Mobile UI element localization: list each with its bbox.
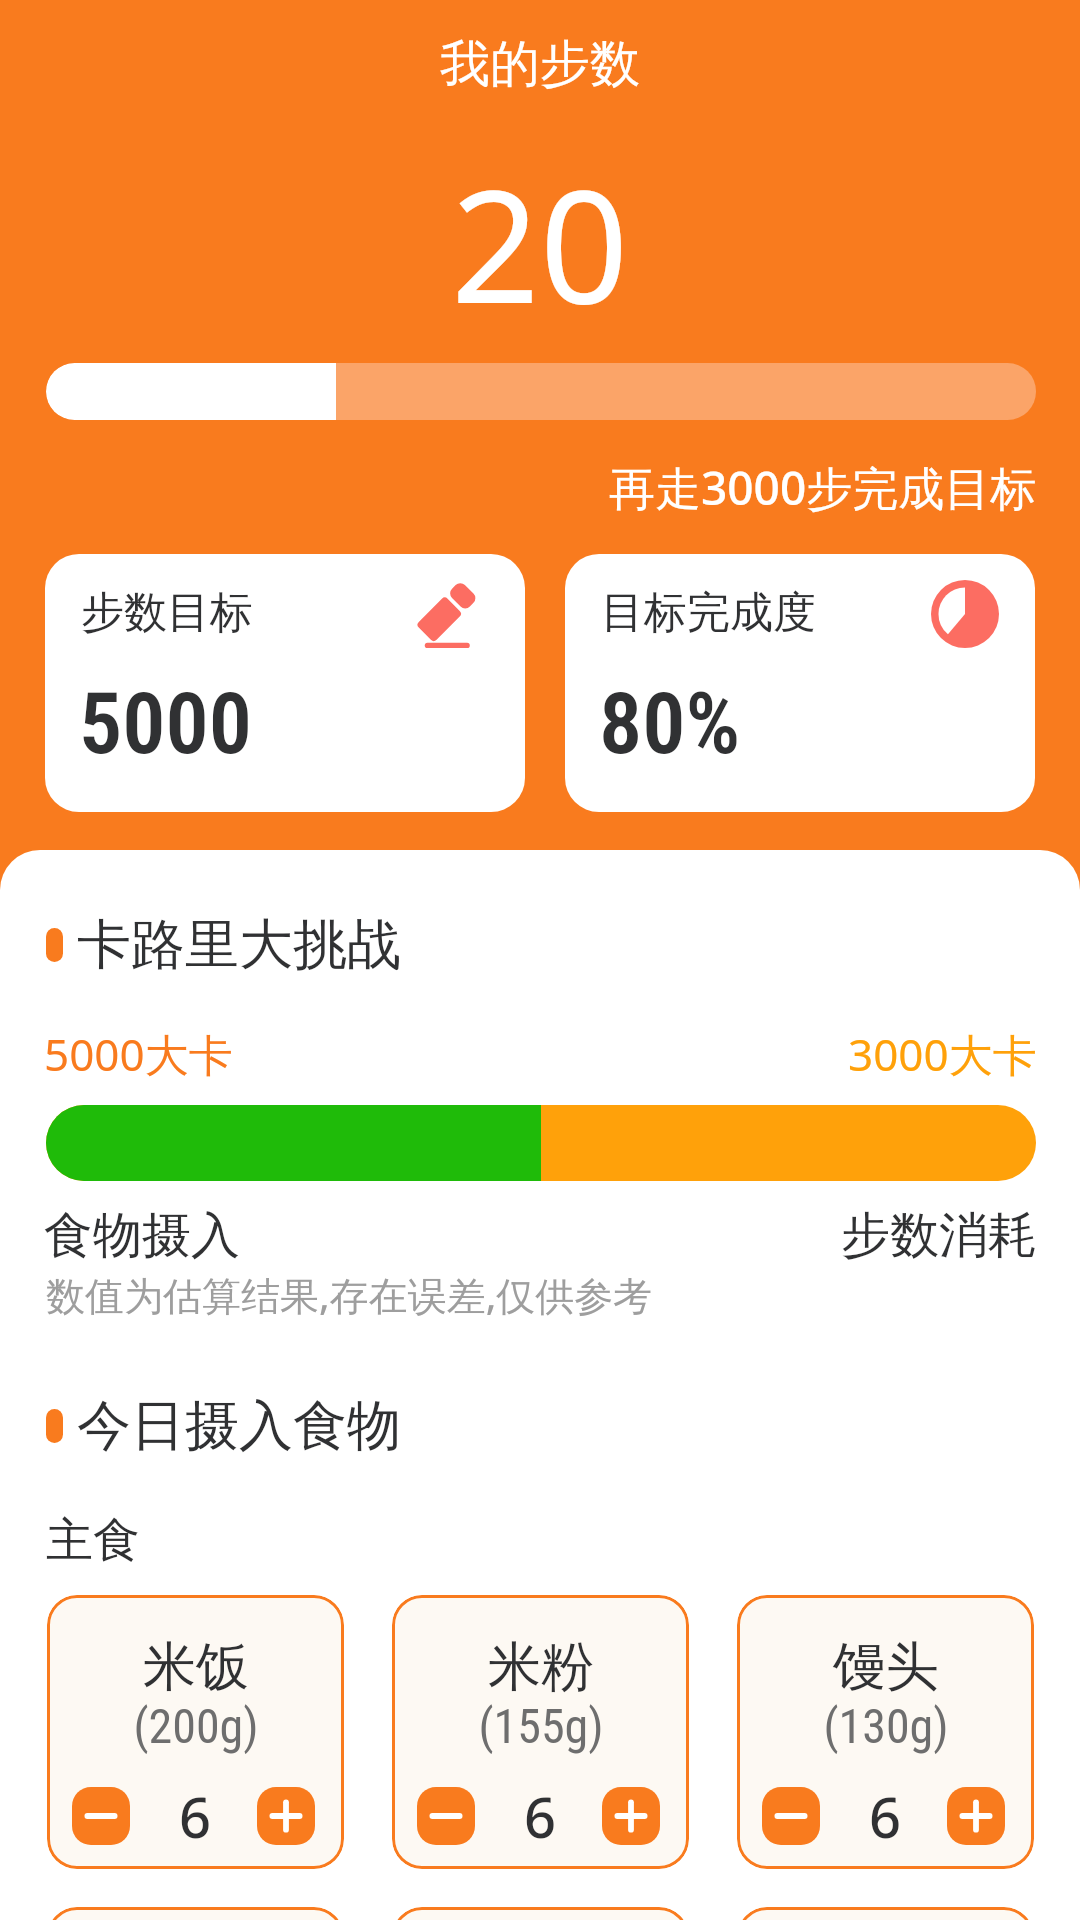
button[interactable]: 米饭 [47, 1595, 344, 1869]
staticText: 步数目标 [81, 586, 253, 640]
staticText: 80% [599, 673, 741, 774]
button[interactable]: Decrease quantity [417, 1787, 475, 1845]
staticText: 馒头 [833, 1634, 939, 1701]
staticText: 卡路里大挑战 [77, 911, 401, 979]
staticText: 主食 [46, 1511, 140, 1570]
button[interactable]: 玉米 [392, 1907, 689, 1920]
button[interactable]: Increase quantity [947, 1787, 1005, 1845]
staticText: (200g) [133, 1698, 259, 1754]
button[interactable]: 红薯 [737, 1907, 1034, 1920]
button[interactable]: 目标完成度 [565, 554, 1035, 812]
staticText: (155g) [478, 1698, 604, 1754]
button[interactable]: 米粉 [392, 1595, 689, 1869]
staticText: 5000 [79, 673, 253, 774]
staticText: (130g) [823, 1698, 949, 1754]
button[interactable]: Goal completion [931, 580, 999, 648]
staticText: 数值为估算结果,存在误差,仅供参考 [46, 1268, 653, 1321]
staticText: 6 [869, 1778, 902, 1854]
button[interactable]: 步数目标 [45, 554, 525, 812]
button[interactable]: 馒头 [737, 1595, 1034, 1869]
staticText: 米粉 [488, 1634, 594, 1701]
staticText: 步数消耗 [841, 1205, 1037, 1267]
staticText: 5000大卡 [44, 1024, 233, 1084]
staticText: 再走3000步完成目标 [609, 456, 1037, 519]
staticText: 目标完成度 [601, 586, 816, 640]
staticText: 3000大卡 [848, 1024, 1037, 1084]
staticText: 今日摄入食物 [77, 1392, 401, 1460]
staticText: 6 [179, 1778, 212, 1854]
staticText: 我的步数 [440, 33, 640, 96]
staticText: 20 [451, 137, 629, 327]
button[interactable]: 面条 [47, 1907, 344, 1920]
button[interactable]: Increase quantity [602, 1787, 660, 1845]
button[interactable]: Decrease quantity [762, 1787, 820, 1845]
button[interactable]: Increase quantity [257, 1787, 315, 1845]
staticText: 米饭 [143, 1634, 249, 1701]
button[interactable]: Edit step goal [419, 580, 475, 650]
staticText: 6 [524, 1778, 557, 1854]
staticText: 食物摄入 [44, 1205, 240, 1267]
button[interactable]: Decrease quantity [72, 1787, 130, 1845]
